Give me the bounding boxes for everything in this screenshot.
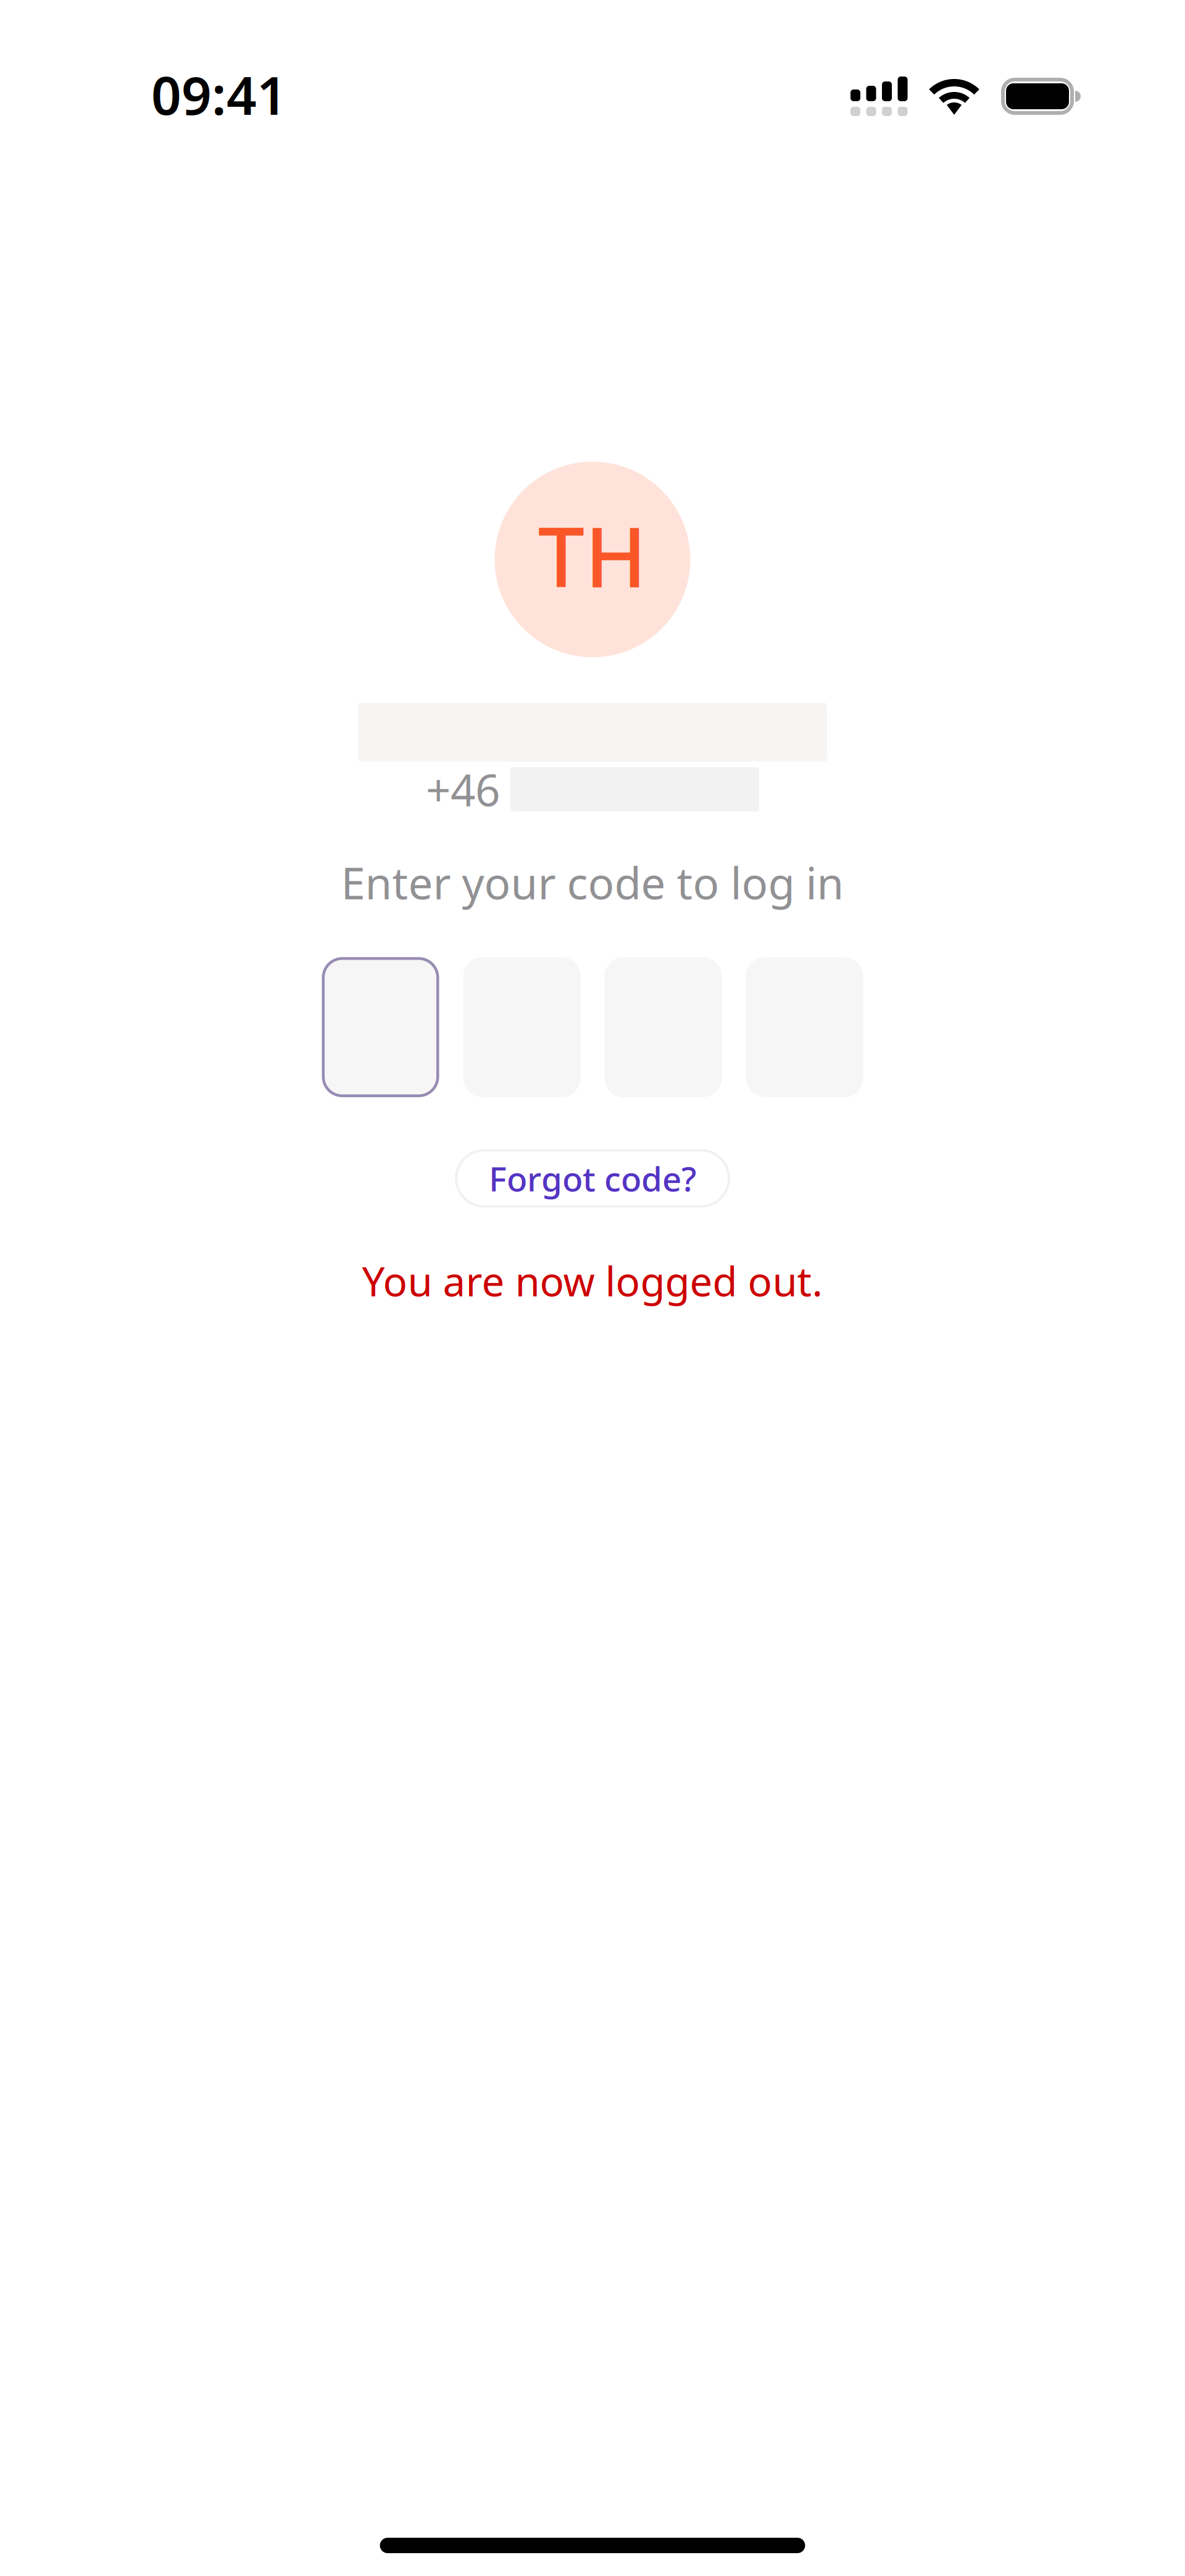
staticText: +46: [426, 760, 500, 818]
staticText: 09:41: [151, 59, 287, 129]
staticText: You are now logged out.: [362, 1254, 823, 1308]
button[interactable]: Forgot code?: [455, 1149, 730, 1208]
button[interactable]: Code digit 1, selected: [322, 957, 439, 1097]
staticText: TH: [538, 500, 647, 610]
staticText: Forgot code?: [489, 1156, 696, 1201]
staticText: Enter your code to log in: [341, 854, 844, 911]
